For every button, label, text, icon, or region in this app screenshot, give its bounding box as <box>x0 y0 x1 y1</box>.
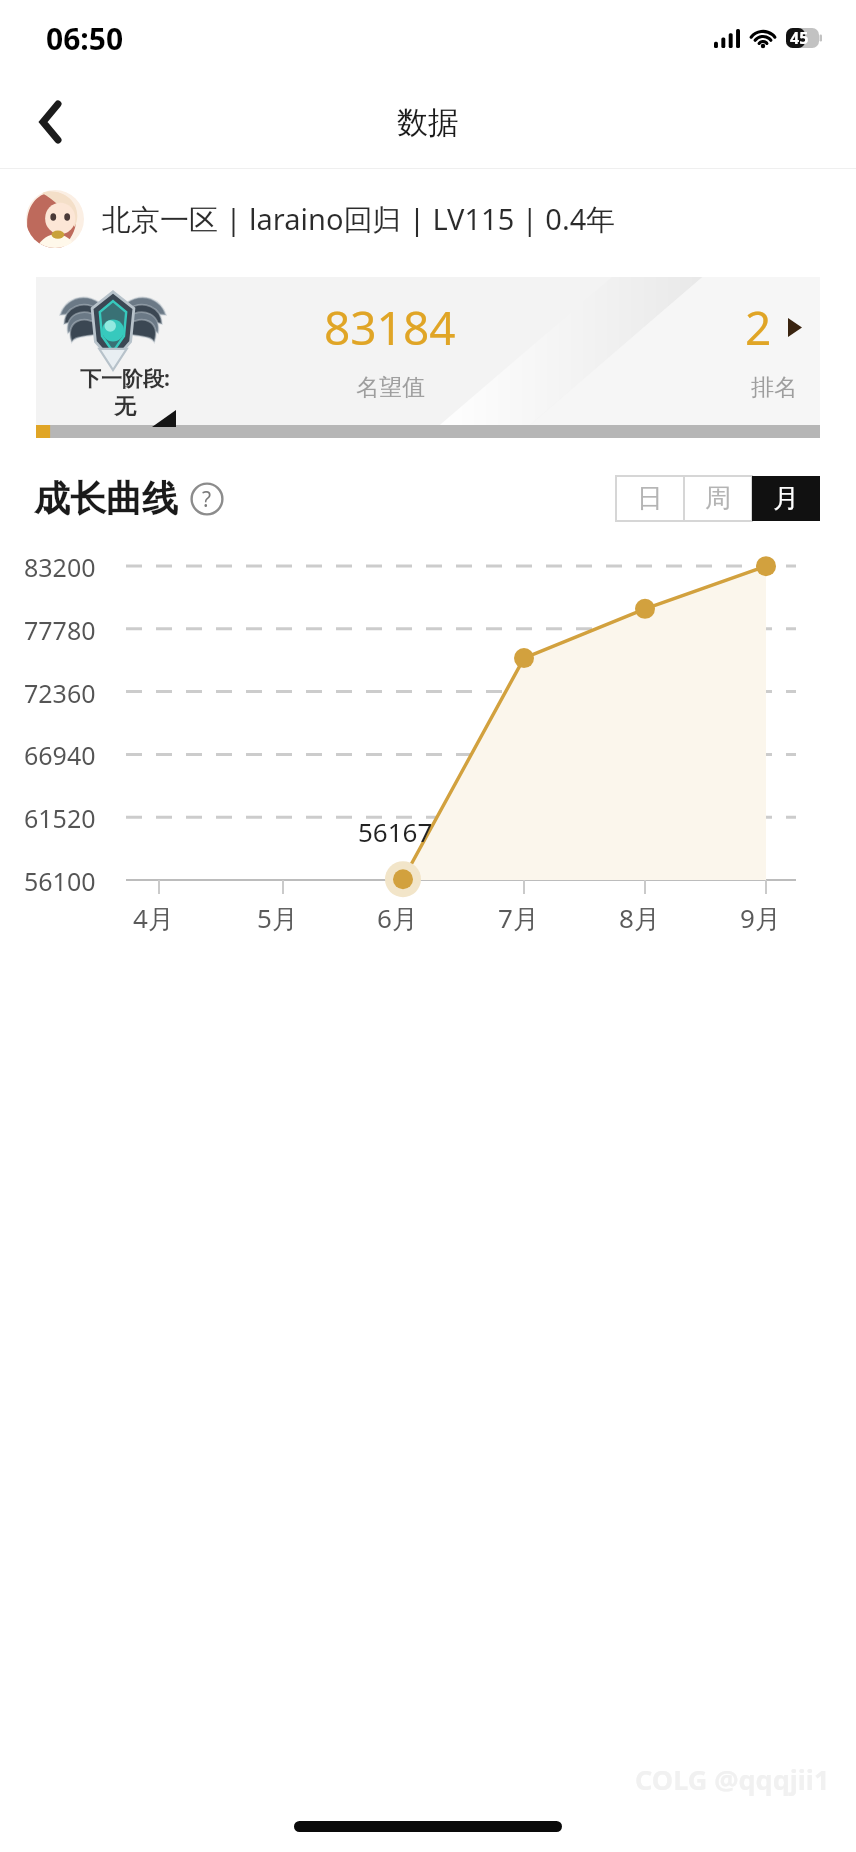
button[interactable]: 日 <box>616 476 684 521</box>
staticText: 56167 <box>358 814 433 849</box>
staticText: 名望值 <box>356 373 425 402</box>
staticText: 8月 <box>619 900 660 936</box>
staticText: 72360 <box>24 676 96 710</box>
button[interactable]: 下一阶段: <box>36 277 820 425</box>
button[interactable]: 周 <box>684 476 752 521</box>
staticText: 无 <box>114 393 136 421</box>
staticText: 6月 <box>377 900 418 936</box>
staticText: 成长曲线 <box>34 476 178 521</box>
staticText: 4月 <box>133 900 174 936</box>
staticText: 61520 <box>24 801 96 835</box>
staticText: 77780 <box>24 613 96 647</box>
staticText: COLG @qqqjii1 <box>635 1761 830 1798</box>
staticText: 66940 <box>24 738 96 772</box>
staticText: 北京一区 | laraino回归 | LV115 | 0.4年 <box>102 199 616 239</box>
staticText: 9月 <box>740 900 781 936</box>
staticText: 月 <box>773 482 799 515</box>
staticText: 下一阶段: <box>80 364 170 393</box>
staticText: 06:50 <box>46 18 124 59</box>
button[interactable]: 月 <box>752 476 820 521</box>
staticText: 83184 <box>324 296 456 359</box>
staticText: 5月 <box>257 900 298 936</box>
button[interactable]: 返回 <box>22 93 80 151</box>
staticText: 排名 <box>751 373 797 402</box>
button[interactable]: 帮助说明 <box>190 482 224 516</box>
staticText: 数据 <box>397 103 459 142</box>
staticText: 日 <box>637 482 663 515</box>
staticText: 83200 <box>24 550 96 584</box>
staticText: 7月 <box>498 900 539 936</box>
staticText: 56100 <box>24 864 96 898</box>
staticText: ? <box>202 485 212 514</box>
button[interactable]: 北京一区 | laraino回归 | LV115 | 0.4年 <box>0 169 856 269</box>
staticText: 2 <box>745 296 772 359</box>
staticText: 周 <box>705 482 731 515</box>
staticText: 45 <box>790 27 809 49</box>
